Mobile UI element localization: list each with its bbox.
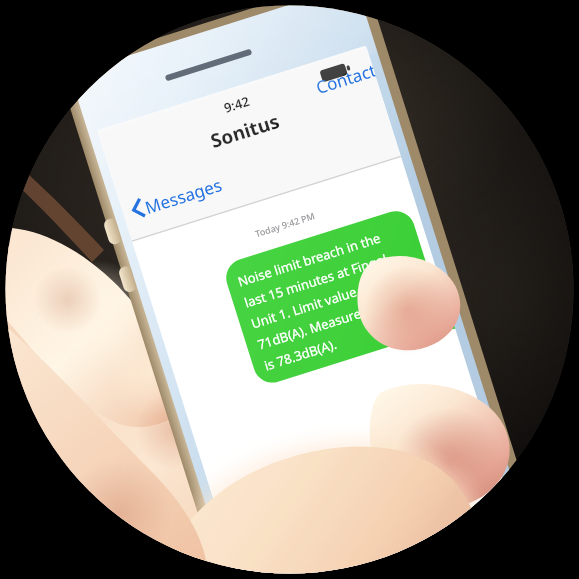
button[interactable]: Sonitus noise alert text message on phon… xyxy=(0,0,579,579)
